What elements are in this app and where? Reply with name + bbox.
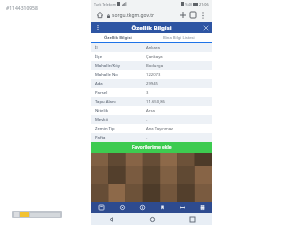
staticText: Çankaya	[146, 54, 208, 60]
button[interactable]: Mevkii	[91, 115, 212, 124]
button[interactable]: Favorilerime ekle	[91, 142, 212, 153]
staticText: Arsa	[146, 108, 208, 114]
staticText: Mahalle/Köy	[95, 63, 146, 69]
staticText: Parsel	[95, 90, 146, 96]
staticText: Favorilerime ekle	[132, 144, 172, 151]
button[interactable]: Mahalle No	[91, 70, 212, 79]
staticText: Bina Bilgi Listesi	[163, 35, 195, 41]
staticText: Tapu Alanı	[95, 99, 146, 105]
staticText: Ada	[95, 81, 146, 87]
button[interactable]: Bina Bilgi Listesi	[145, 33, 212, 42]
button[interactable]: Back	[91, 213, 132, 225]
staticText: 11.650,86	[146, 99, 208, 105]
button[interactable]: Mahalle/Köy	[91, 61, 212, 70]
button[interactable]: Close	[202, 24, 209, 31]
staticText: Bodurga	[146, 63, 208, 69]
button[interactable]: Locate	[112, 202, 132, 213]
staticText: %48	[185, 2, 192, 7]
button[interactable]: Print	[192, 202, 212, 213]
staticText: 3	[146, 90, 208, 96]
button[interactable]: Tapu Alanı	[91, 97, 212, 106]
button[interactable]: sorgu.tkgm.gov.tr	[107, 12, 178, 19]
button[interactable]: Zemin Tip	[91, 124, 212, 133]
staticText: #1144310958	[6, 5, 38, 12]
button[interactable]: New tab	[178, 10, 188, 20]
staticText: sorgu.tkgm.gov.tr	[112, 12, 155, 19]
button[interactable]: Layers	[91, 202, 112, 213]
button[interactable]: Menu	[91, 22, 212, 33]
staticText: Nitelik	[95, 108, 146, 114]
staticText: Özellik Bilgisi	[101, 24, 202, 32]
staticText: Zemin Tip	[95, 126, 146, 132]
button[interactable]: Home	[132, 213, 172, 225]
staticText: Pafta	[95, 135, 146, 141]
button[interactable]: Parsel	[91, 88, 212, 97]
button[interactable]: More options	[198, 10, 208, 20]
button[interactable]: Özellik Bilgisi	[91, 33, 145, 42]
button[interactable]: Measure	[172, 202, 192, 213]
staticText: Ana Taşınmaz	[146, 126, 208, 132]
button[interactable]: Nitelik	[91, 106, 212, 115]
button[interactable]: Bookmark	[152, 202, 172, 213]
staticText: Özellik Bilgisi	[104, 35, 132, 41]
button[interactable]: Info	[132, 202, 152, 213]
staticText: Mevkii	[95, 117, 146, 123]
button[interactable]: Home	[95, 10, 105, 20]
staticText: İlçe	[95, 54, 146, 60]
button[interactable]: Tabs	[188, 10, 198, 20]
staticText: Ankara	[146, 45, 208, 51]
button[interactable]: Pafta	[91, 133, 212, 142]
staticText: İl	[95, 45, 146, 51]
staticText: 122073	[146, 72, 208, 78]
staticText: Mahalle No	[95, 72, 146, 78]
button[interactable]: İl	[91, 43, 212, 52]
button[interactable]: Menu	[94, 24, 101, 31]
button[interactable]: Ada	[91, 79, 212, 88]
staticText: Turk Telekom	[94, 2, 116, 7]
staticText: 29945	[146, 81, 208, 87]
button[interactable]: Recent apps	[172, 213, 212, 225]
button[interactable]: İlçe	[91, 52, 212, 61]
staticText: 21:06	[199, 2, 209, 7]
